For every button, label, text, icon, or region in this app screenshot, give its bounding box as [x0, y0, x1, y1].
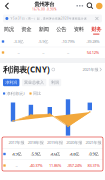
button[interactable]: 新闻 [35, 25, 52, 36]
button[interactable]: 公告 [52, 25, 70, 36]
staticText: 2017年报 [9, 140, 25, 145]
staticText: -- [17, 50, 19, 55]
button[interactable]: Close [94, 16, 100, 21]
staticText: -5.9亿 [31, 151, 41, 157]
button[interactable]: Back [2, 0, 12, 11]
button[interactable]: Info [52, 68, 55, 71]
button[interactable]: 简况 [0, 25, 17, 36]
staticText: 利润表(CNY) [3, 64, 50, 75]
button[interactable]: 资料 [70, 25, 87, 36]
staticText: -40.37% [29, 163, 42, 168]
staticText: 资料 [74, 26, 84, 32]
button[interactable]: 资金 [17, 25, 35, 36]
staticText: 利润 [51, 80, 59, 85]
staticText: -- [16, 163, 18, 168]
button[interactable]: 营业总收入 [22, 79, 46, 86]
staticText: 净利润(元) [7, 91, 25, 96]
staticText: 2021年报 [83, 67, 99, 72]
staticText: -- [67, 50, 69, 55]
staticText: 2019年报 [47, 140, 63, 145]
staticText: -10.79% [61, 39, 74, 44]
staticText: 2021年报 [85, 140, 101, 145]
button[interactable]: Search [86, 1, 94, 11]
button[interactable]: 财务 [87, 25, 105, 36]
staticText: -5.9亿 [38, 39, 48, 44]
staticText: 1676.00 -0.90% [32, 8, 56, 11]
button[interactable]: Account [96, 3, 102, 9]
staticText: 83.31% [87, 163, 99, 168]
staticText: 下5月31日（周一）起，贵州茅台实施2020年度权益分派 [10, 17, 87, 20]
staticText: 贵州茅台 [34, 1, 54, 7]
staticText: -39.28% [86, 39, 99, 44]
staticText: 净利润 [5, 80, 17, 85]
staticText: 新闻 [39, 26, 49, 32]
staticText: -4.9亿 [12, 151, 22, 157]
staticText: -3.3亿 [13, 39, 23, 44]
staticText: 营业总收入 [24, 80, 44, 85]
staticText: 2020年报 [66, 140, 82, 145]
staticText: 简况 [4, 26, 14, 32]
staticText: 同比 [33, 91, 41, 96]
staticText: 2018年报 [28, 140, 44, 145]
staticText: -- [42, 50, 44, 55]
staticText: -0.9亿 [88, 151, 98, 157]
staticText: 财务 [91, 26, 101, 32]
staticText: 公告 [56, 26, 66, 32]
button[interactable]: 净利润 [3, 79, 19, 86]
staticText: -4.8亿 [69, 151, 79, 157]
button[interactable]: 2021年报 [83, 67, 102, 72]
staticText: 资金 [21, 26, 31, 32]
staticText: 11.86% [49, 163, 61, 168]
button[interactable]: 利润 [49, 79, 61, 86]
button[interactable]: More [76, 1, 84, 11]
staticText: -357.24% [67, 163, 82, 168]
staticText: -4.6亿 [50, 151, 60, 157]
staticText: 54.12% [87, 50, 99, 55]
